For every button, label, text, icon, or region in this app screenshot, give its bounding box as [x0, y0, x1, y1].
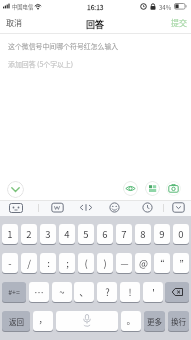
staticText: '	[152, 285, 155, 299]
button[interactable]	[51, 202, 64, 213]
staticText: 3	[45, 227, 51, 241]
staticText: @	[139, 256, 148, 270]
staticText: 。	[126, 314, 136, 327]
button[interactable]: )	[97, 253, 113, 273]
staticText: 换行	[171, 316, 186, 327]
button[interactable]	[56, 311, 118, 331]
staticText: —	[120, 257, 129, 270]
staticText: ;	[66, 256, 69, 270]
staticText: 7	[121, 227, 127, 241]
button[interactable]: 9	[154, 224, 170, 244]
button[interactable]: 3	[40, 224, 56, 244]
staticText: 0	[178, 227, 184, 241]
staticText: 回答	[86, 18, 105, 31]
staticText: 这个微信号中间哪个符号红怎么输入	[8, 41, 119, 51]
button[interactable]: 0	[173, 224, 189, 244]
button[interactable]: ”	[173, 253, 189, 273]
button[interactable]: :	[40, 253, 56, 273]
button[interactable]: 更多	[144, 311, 165, 331]
staticText: 5	[83, 227, 89, 241]
button[interactable]: !	[120, 282, 140, 302]
button[interactable]: /	[21, 253, 37, 273]
staticText: !	[128, 285, 132, 299]
button[interactable]	[165, 282, 189, 302]
staticText: ?	[105, 285, 110, 299]
button[interactable]	[8, 201, 25, 214]
button[interactable]: 换行	[168, 311, 189, 331]
staticText: (	[84, 256, 88, 270]
staticText: 6	[102, 227, 108, 241]
button[interactable]: 1	[2, 224, 18, 244]
staticText: 8	[140, 227, 146, 241]
button[interactable]: ;	[59, 253, 75, 273]
button[interactable]: 4	[59, 224, 75, 244]
button[interactable]: 提交	[171, 17, 187, 29]
button[interactable]: ~	[52, 282, 72, 302]
staticText: “	[160, 256, 165, 270]
button[interactable]: 。	[121, 311, 141, 331]
button[interactable]	[79, 202, 93, 213]
staticText: …	[34, 285, 44, 299]
button[interactable]	[145, 181, 160, 196]
button[interactable]	[172, 202, 185, 213]
button[interactable]: '	[143, 282, 163, 302]
staticText: 、	[79, 285, 89, 299]
staticText: -	[8, 256, 12, 270]
staticText: ”	[179, 256, 184, 270]
button[interactable]: 、	[74, 282, 94, 302]
staticText: ~	[59, 285, 65, 299]
staticText: ，	[38, 313, 48, 326]
staticText: 中国电信	[12, 3, 34, 11]
staticText: 2	[26, 227, 32, 241]
staticText: 34%	[159, 3, 172, 12]
staticText: 4	[64, 227, 70, 241]
staticText: )	[103, 256, 107, 270]
button[interactable]: ，	[33, 311, 53, 331]
button[interactable]: 2	[21, 224, 37, 244]
button[interactable]	[123, 181, 138, 196]
staticText: :	[47, 256, 50, 270]
staticText: 更多	[147, 316, 162, 327]
staticText: #+=	[8, 287, 20, 297]
button[interactable]: (	[78, 253, 94, 273]
button[interactable]: 6	[97, 224, 113, 244]
button[interactable]: —	[116, 253, 132, 273]
button[interactable]: 8	[135, 224, 151, 244]
staticText: 9	[159, 227, 165, 241]
button[interactable]: #+=	[2, 282, 26, 302]
staticText: 1	[7, 227, 13, 241]
button[interactable]: 5	[78, 224, 94, 244]
button[interactable]	[166, 181, 181, 196]
button[interactable]: -	[2, 253, 18, 273]
button[interactable]: 7	[116, 224, 132, 244]
staticText: 返回	[9, 316, 24, 327]
button[interactable]	[7, 181, 24, 198]
button[interactable]: “	[154, 253, 170, 273]
button[interactable]	[142, 202, 153, 213]
staticText: /	[27, 256, 31, 270]
staticText: 添加回答 (5个字以上)	[8, 59, 74, 69]
button[interactable]	[109, 202, 120, 213]
button[interactable]: 取消	[6, 17, 22, 29]
button[interactable]: 返回	[2, 311, 30, 331]
staticText: 16:13	[87, 2, 104, 12]
button[interactable]: @	[135, 253, 151, 273]
button[interactable]: ?	[97, 282, 117, 302]
button[interactable]: …	[29, 282, 49, 302]
